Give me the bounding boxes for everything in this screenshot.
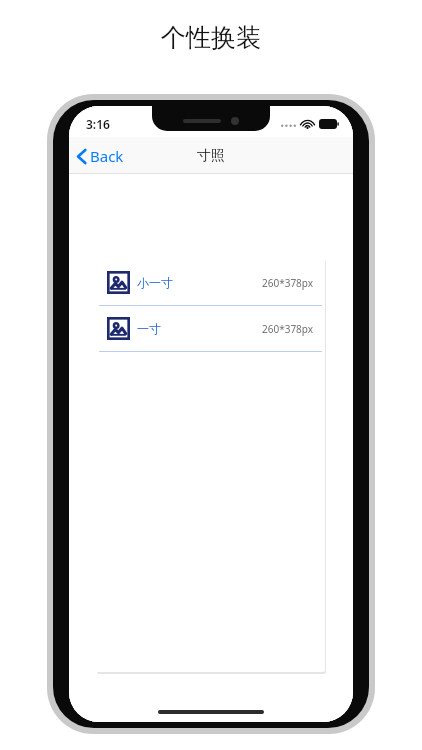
staticText: 小一寸 xyxy=(137,275,173,290)
staticText: 寸照 xyxy=(197,147,225,165)
staticText: 3:16 xyxy=(86,116,110,132)
button[interactable]: Photo size xyxy=(96,260,325,305)
staticText: 260*378px xyxy=(262,322,314,336)
button[interactable]: Photo size xyxy=(96,306,325,351)
staticText: Back xyxy=(90,146,124,166)
button[interactable]: Back xyxy=(69,142,132,170)
staticText: 一寸 xyxy=(137,321,161,336)
staticText: 个性换装 xyxy=(161,22,261,53)
other: Photo size xyxy=(107,317,130,340)
other: Photo size xyxy=(107,271,130,294)
staticText: 260*378px xyxy=(262,276,314,290)
